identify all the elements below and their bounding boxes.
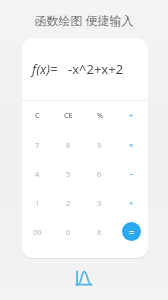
button[interactable]: 00 bbox=[22, 217, 53, 246]
staticText: X bbox=[97, 227, 102, 237]
button[interactable]: 4 bbox=[22, 159, 53, 188]
button[interactable]: f(x)= bbox=[22, 38, 148, 100]
button[interactable]: × bbox=[115, 130, 148, 159]
other: Equals bbox=[122, 222, 141, 241]
staticText: 4 bbox=[35, 169, 40, 179]
staticText: % bbox=[97, 111, 103, 121]
staticText: C bbox=[35, 111, 40, 121]
button[interactable]: − bbox=[115, 159, 148, 188]
staticText: 1 bbox=[35, 198, 40, 208]
staticText: 函数绘图 便捷输入 bbox=[34, 12, 134, 28]
staticText: 3 bbox=[97, 198, 102, 208]
button[interactable]: Graph logo bbox=[74, 268, 94, 288]
staticText: 6 bbox=[97, 169, 102, 179]
staticText: -x^2+x+2 bbox=[68, 60, 124, 78]
staticText: CE bbox=[64, 111, 73, 121]
staticText: 00 bbox=[33, 227, 42, 237]
staticText: 0 bbox=[66, 227, 71, 237]
staticText: − bbox=[129, 169, 134, 179]
staticText: f(x)= bbox=[32, 60, 58, 78]
staticText: = bbox=[129, 226, 135, 238]
button[interactable]: Equals bbox=[115, 217, 148, 246]
button[interactable]: + bbox=[115, 188, 148, 217]
button[interactable]: 2 bbox=[53, 188, 84, 217]
button[interactable]: X bbox=[84, 217, 115, 246]
staticText: × bbox=[129, 140, 134, 150]
staticText: 8 bbox=[66, 140, 71, 150]
button[interactable]: CE bbox=[53, 101, 84, 130]
button[interactable]: 5 bbox=[53, 159, 84, 188]
staticText: + bbox=[129, 198, 134, 208]
button[interactable]: % bbox=[84, 101, 115, 130]
button[interactable]: 0 bbox=[53, 217, 84, 246]
button[interactable]: 7 bbox=[22, 130, 53, 159]
button[interactable]: 1 bbox=[22, 188, 53, 217]
staticText: 2 bbox=[66, 198, 71, 208]
button[interactable]: 3 bbox=[84, 188, 115, 217]
button[interactable]: 9 bbox=[84, 130, 115, 159]
button[interactable]: 8 bbox=[53, 130, 84, 159]
staticText: 7 bbox=[35, 140, 40, 150]
staticText: 9 bbox=[97, 140, 102, 150]
button[interactable]: ÷ bbox=[115, 101, 148, 130]
staticText: ÷ bbox=[129, 111, 134, 121]
button[interactable]: 6 bbox=[84, 159, 115, 188]
button[interactable]: C bbox=[22, 101, 53, 130]
staticText: 5 bbox=[66, 169, 71, 179]
